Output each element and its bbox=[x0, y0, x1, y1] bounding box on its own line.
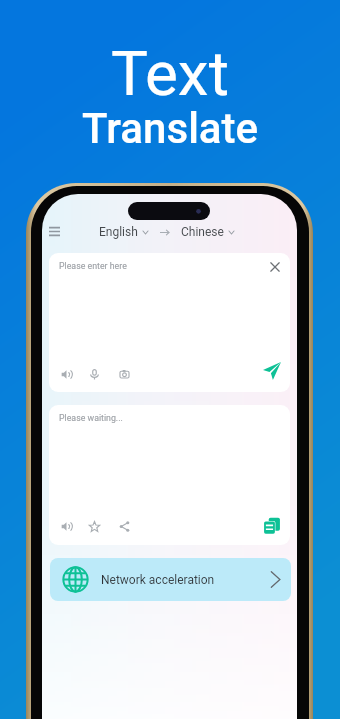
button[interactable]: Send bbox=[261, 360, 283, 382]
button[interactable]: Clear text bbox=[266, 258, 284, 276]
button[interactable]: English bbox=[99, 222, 148, 242]
button[interactable]: Speak bbox=[57, 365, 75, 383]
button[interactable]: Network acceleration bbox=[50, 558, 291, 601]
button[interactable]: Share bbox=[115, 517, 133, 535]
staticText: Please waiting... bbox=[59, 413, 123, 423]
button[interactable]: Camera bbox=[115, 365, 133, 383]
staticText: Chinese bbox=[181, 225, 224, 239]
button[interactable]: Speak bbox=[57, 517, 75, 535]
staticText: Network acceleration bbox=[101, 573, 215, 587]
button[interactable]: Chinese bbox=[181, 222, 234, 242]
button[interactable]: Copy bbox=[261, 515, 283, 537]
button[interactable]: Favourite bbox=[85, 517, 103, 535]
button[interactable]: Voice input bbox=[85, 365, 103, 383]
staticText: English bbox=[99, 225, 138, 239]
button[interactable]: Menu bbox=[45, 222, 64, 241]
staticText: Translate bbox=[82, 104, 259, 153]
staticText: Text bbox=[111, 37, 229, 110]
staticText: Please enter here bbox=[59, 261, 127, 271]
